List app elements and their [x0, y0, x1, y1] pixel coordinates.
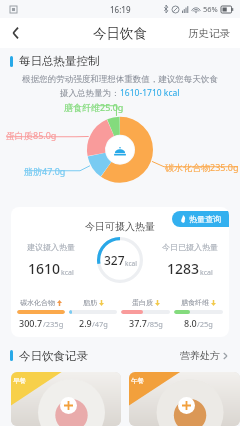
- staticText: 早餐: [13, 377, 26, 385]
- button[interactable]: Back: [0, 18, 30, 48]
- staticText: 今日饮食记录: [19, 349, 88, 363]
- button[interactable]: 营养处方: [176, 345, 232, 366]
- staticText: 蛋白质: [132, 298, 153, 307]
- staticText: 今日饮食: [93, 25, 147, 42]
- staticText: 碳水化合物235.0g: [165, 161, 239, 173]
- staticText: kcal: [61, 268, 74, 278]
- staticText: 膳食纤维25.0g: [64, 101, 124, 113]
- staticText: 2.9: [79, 317, 92, 329]
- staticText: kcal: [200, 268, 213, 278]
- staticText: 根据您的劳动强度和理想体重数值，建议您每天饮食: [22, 74, 218, 85]
- staticText: 热量查询: [189, 214, 221, 224]
- button[interactable]: 历史记录: [178, 21, 240, 46]
- staticText: 今日已摄入热量: [162, 242, 218, 252]
- staticText: /25g: [197, 319, 213, 329]
- staticText: 300.7: [19, 317, 43, 329]
- button[interactable]: Add 午餐: [129, 372, 240, 426]
- staticText: /235g: [43, 319, 64, 329]
- staticText: 建议摄入热量: [27, 242, 75, 252]
- button[interactable]: 热量查询: [172, 211, 229, 227]
- staticText: kcal: [125, 259, 137, 268]
- staticText: 蛋白质85.0g: [6, 129, 57, 141]
- staticText: 1610: [28, 259, 61, 278]
- staticText: 历史记录: [188, 27, 230, 40]
- staticText: 营养处方: [180, 349, 220, 362]
- staticText: 56%: [203, 4, 218, 14]
- staticText: 16:19: [110, 4, 131, 15]
- staticText: /47g: [92, 319, 108, 329]
- staticText: 8.0: [184, 317, 197, 329]
- staticText: 脂肪47.0g: [24, 165, 66, 177]
- staticText: 每日总热量控制: [19, 54, 100, 68]
- staticText: 1610-1710 kcal: [120, 87, 180, 99]
- staticText: 碳水化合物: [20, 298, 55, 307]
- staticText: 327: [104, 252, 125, 268]
- staticText: 午餐: [131, 377, 144, 385]
- button[interactable]: Add 早餐: [11, 372, 121, 426]
- staticText: 膳食纤维: [181, 298, 209, 307]
- staticText: 今日可摄入热量: [85, 220, 155, 233]
- staticText: 1283: [167, 259, 200, 278]
- staticText: 脂肪: [83, 298, 97, 307]
- staticText: /85g: [147, 319, 163, 329]
- staticText: 37.7: [129, 317, 147, 329]
- staticText: 摄入总热量为：: [60, 88, 120, 99]
